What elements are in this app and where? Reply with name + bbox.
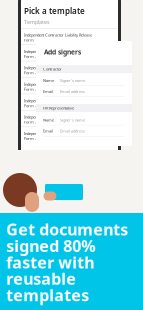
staticText: Independent Contractor Liability Release (24, 49, 92, 54)
staticText: Name (43, 78, 54, 83)
button[interactable]: Email (36, 86, 132, 97)
button[interactable]: Name (36, 114, 132, 125)
staticText: Independent Contractor Liability Release (24, 114, 92, 120)
staticText: HR Representative (43, 105, 74, 111)
staticText: Email (43, 89, 53, 94)
button[interactable]: Independent Contractor Liability Release (21, 94, 118, 110)
staticText: Signer's name (60, 117, 85, 123)
staticText: Form - Basic (24, 119, 47, 125)
staticText: Add signers (44, 48, 81, 56)
staticText: Form - Legal (24, 136, 46, 141)
button[interactable]: Name (36, 75, 132, 86)
staticText: Form - Short (24, 103, 46, 108)
button[interactable]: Independent Contractor Liability Release (21, 61, 118, 77)
staticText: Email address (60, 128, 85, 134)
staticText: reusable (6, 268, 76, 289)
staticText: Independent Contractor Liability Release (24, 98, 92, 103)
staticText: Form - Simple (24, 86, 49, 92)
button[interactable]: Independent Contractor Liability Release (21, 126, 118, 143)
staticText: Form (24, 37, 34, 43)
staticText: Pick a template (24, 6, 85, 16)
staticText: faster with (6, 252, 94, 273)
staticText: Independent Contractor Liability Release (24, 81, 92, 87)
staticText: Form - Standard (24, 70, 52, 75)
staticText: Get documents (6, 219, 128, 240)
staticText: Templates (24, 18, 50, 26)
staticText: Independent Contractor Liability Release (24, 65, 92, 70)
button[interactable]: Independent Contractor Liability Release (21, 77, 118, 94)
button[interactable]: Independent Contractor Liability Release (21, 28, 118, 44)
button[interactable]: Independent Contractor Liability Release (21, 110, 118, 126)
staticText: Independent Contractor Liability Release (24, 131, 92, 136)
staticText: Email (43, 128, 53, 134)
staticText: Contractor (43, 66, 62, 72)
staticText: Form - Accepted (24, 54, 53, 59)
staticText: Name (43, 117, 54, 123)
button[interactable]: Independent Contractor Liability Release (21, 44, 118, 61)
staticText: Signer's name (60, 78, 85, 83)
staticText: Independent Contractor Liability Release (24, 32, 92, 38)
staticText: Email address (60, 89, 85, 94)
staticText: templates (6, 284, 89, 306)
staticText: signed 80% (6, 235, 95, 256)
button[interactable]: Email (36, 125, 132, 136)
